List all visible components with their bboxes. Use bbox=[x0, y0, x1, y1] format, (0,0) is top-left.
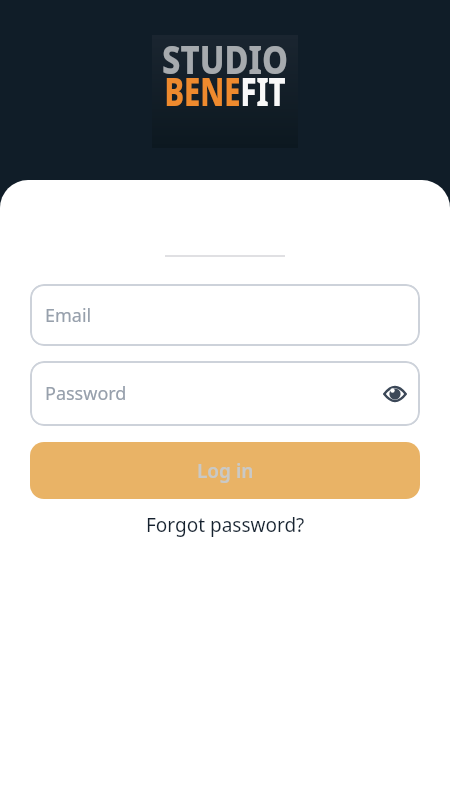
staticText: Log in bbox=[197, 458, 254, 484]
button[interactable]: Forgot password? bbox=[146, 512, 305, 538]
staticText: BENEFIT bbox=[142, 64, 307, 117]
button[interactable]: Email bbox=[30, 284, 420, 346]
button[interactable]: Password bbox=[30, 361, 420, 426]
staticText: STUDIO bbox=[133, 32, 317, 85]
staticText: Password bbox=[45, 381, 127, 406]
button[interactable]: Log in bbox=[30, 442, 420, 499]
staticText: Email bbox=[45, 303, 92, 328]
